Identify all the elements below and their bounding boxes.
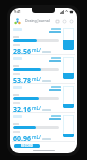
button[interactable]: RECORD	[14, 144, 40, 148]
button[interactable]: Calendar	[54, 18, 60, 24]
button[interactable]: App menu	[13, 17, 21, 25]
button[interactable]: 53.78	[13, 57, 74, 83]
button[interactable]: 60.96	[13, 115, 74, 141]
button[interactable]: 32.16	[13, 86, 74, 112]
staticText: Dosing Journal	[25, 18, 50, 23]
button[interactable]: Volume gauge	[63, 57, 74, 79]
staticText: mL/	[32, 105, 41, 112]
staticText: mL/	[32, 76, 41, 83]
button[interactable]: Profile	[68, 18, 74, 24]
button[interactable]: Volume gauge	[63, 86, 74, 108]
staticText: 32.16	[13, 105, 31, 112]
staticText: 28.56	[13, 47, 31, 54]
staticText: mL/	[32, 47, 41, 54]
button[interactable]: Search	[61, 18, 67, 24]
button[interactable]: Volume gauge	[63, 28, 74, 50]
staticText: 9:41	[14, 9, 21, 14]
button[interactable]: 28.56	[13, 28, 74, 54]
staticText: RECORD	[21, 144, 34, 148]
staticText: mL/	[32, 134, 41, 141]
staticText: 53.78	[13, 76, 31, 83]
staticText: 60.96	[13, 134, 31, 141]
button[interactable]: Volume gauge	[63, 115, 74, 137]
